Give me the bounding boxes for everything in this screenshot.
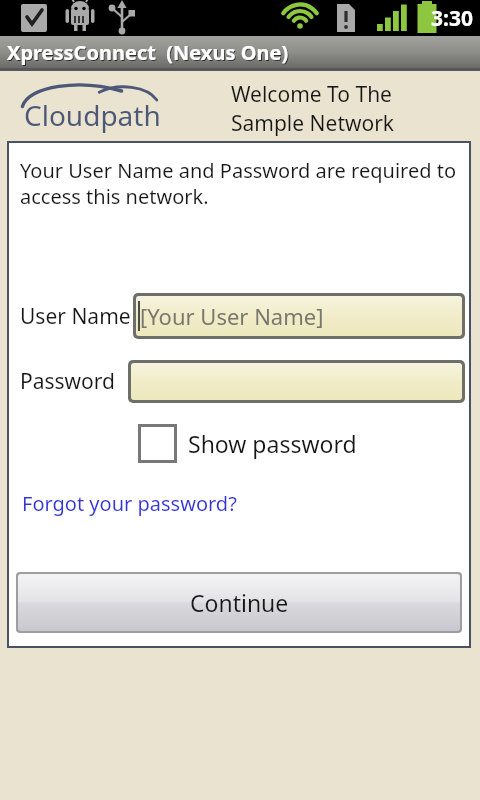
staticText: Cloudpath	[24, 96, 161, 134]
button[interactable]	[131, 363, 462, 400]
staticText: 3:30	[431, 4, 473, 33]
staticText: Sample Network	[231, 109, 395, 138]
staticText: Show password	[188, 428, 357, 459]
staticText: User Name	[20, 302, 131, 331]
button[interactable]: Forgot your password?	[22, 490, 237, 517]
button[interactable]: [Your User Name]	[136, 296, 462, 336]
staticText: Password	[20, 367, 115, 396]
staticText: Continue	[190, 587, 289, 618]
staticText: XpressConnect (Nexus One)	[7, 39, 289, 66]
staticText: Your User Name and Password are required…	[20, 157, 456, 210]
staticText: Welcome To The	[231, 80, 392, 109]
staticText: [Your User Name]	[140, 301, 324, 331]
staticText: Forgot your password?	[22, 490, 237, 517]
staticText: XpressConnect (Nexus One)	[8, 40, 290, 67]
button[interactable]: Continue	[18, 574, 460, 631]
button[interactable]: Show password	[138, 424, 357, 463]
other: Cloudpath logo	[16, 79, 176, 109]
